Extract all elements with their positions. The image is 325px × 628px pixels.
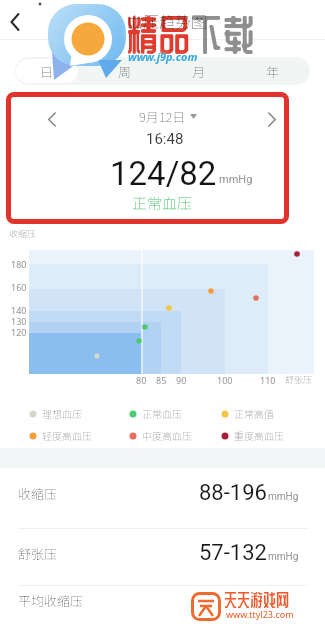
staticText: 140	[11, 304, 27, 316]
staticText: 周	[118, 62, 132, 81]
staticText: 110	[260, 374, 276, 386]
staticText: 90	[176, 374, 187, 386]
staticText: mmHg	[268, 551, 299, 563]
staticText: 130	[11, 315, 27, 327]
staticText: 收缩压	[9, 227, 37, 240]
button[interactable]: 9月12日	[0, 107, 325, 126]
staticText: 舒张压	[18, 544, 58, 563]
staticText: 160	[11, 281, 27, 293]
staticText: 月	[192, 62, 206, 81]
staticText: 舒张压	[285, 373, 313, 386]
button[interactable]	[0, 468, 325, 528]
staticText: 血压趋势图	[127, 9, 208, 32]
staticText: 124/82	[110, 154, 217, 193]
staticText: 天天游戏网	[224, 591, 290, 608]
staticText: 80	[136, 374, 147, 386]
staticText: 精品下载	[126, 13, 255, 55]
staticText: 平均收缩压	[18, 591, 84, 610]
staticText: mmHg	[219, 173, 253, 186]
staticText: 100	[217, 374, 233, 386]
button[interactable]	[268, 113, 276, 126]
staticText: 88-196	[199, 480, 267, 506]
staticText: 16:48	[146, 130, 184, 148]
staticText: 年	[266, 62, 280, 81]
staticText: 120	[11, 326, 27, 338]
button[interactable]	[48, 113, 56, 126]
staticText: 重度高血压	[234, 428, 284, 442]
staticText: www.ttyl23.com	[226, 608, 294, 620]
button[interactable]	[10, 14, 20, 30]
staticText: 轻度高血压	[42, 428, 92, 442]
staticText: 中度高血压	[142, 428, 192, 442]
button[interactable]	[0, 0, 325, 40]
button[interactable]: 周	[88, 57, 162, 85]
staticText: 85	[156, 374, 167, 386]
button[interactable]	[0, 529, 325, 586]
button[interactable]: 月	[162, 57, 236, 85]
button[interactable]: 日	[16, 59, 78, 83]
staticText: 收缩压	[18, 484, 58, 503]
staticText: 正常血压	[132, 192, 193, 214]
staticText: 正常高值	[234, 406, 274, 420]
button[interactable]: 年	[236, 57, 310, 85]
staticText: 正常血压	[142, 406, 182, 420]
staticText: 57-132	[199, 540, 267, 566]
staticText: 理想血压	[42, 406, 82, 420]
staticText: 日	[40, 62, 54, 81]
staticText: mmHg	[268, 491, 299, 503]
staticText: 180	[11, 258, 27, 270]
staticText: 9月12日	[139, 107, 186, 126]
staticText: www.j9p.com	[128, 49, 198, 64]
